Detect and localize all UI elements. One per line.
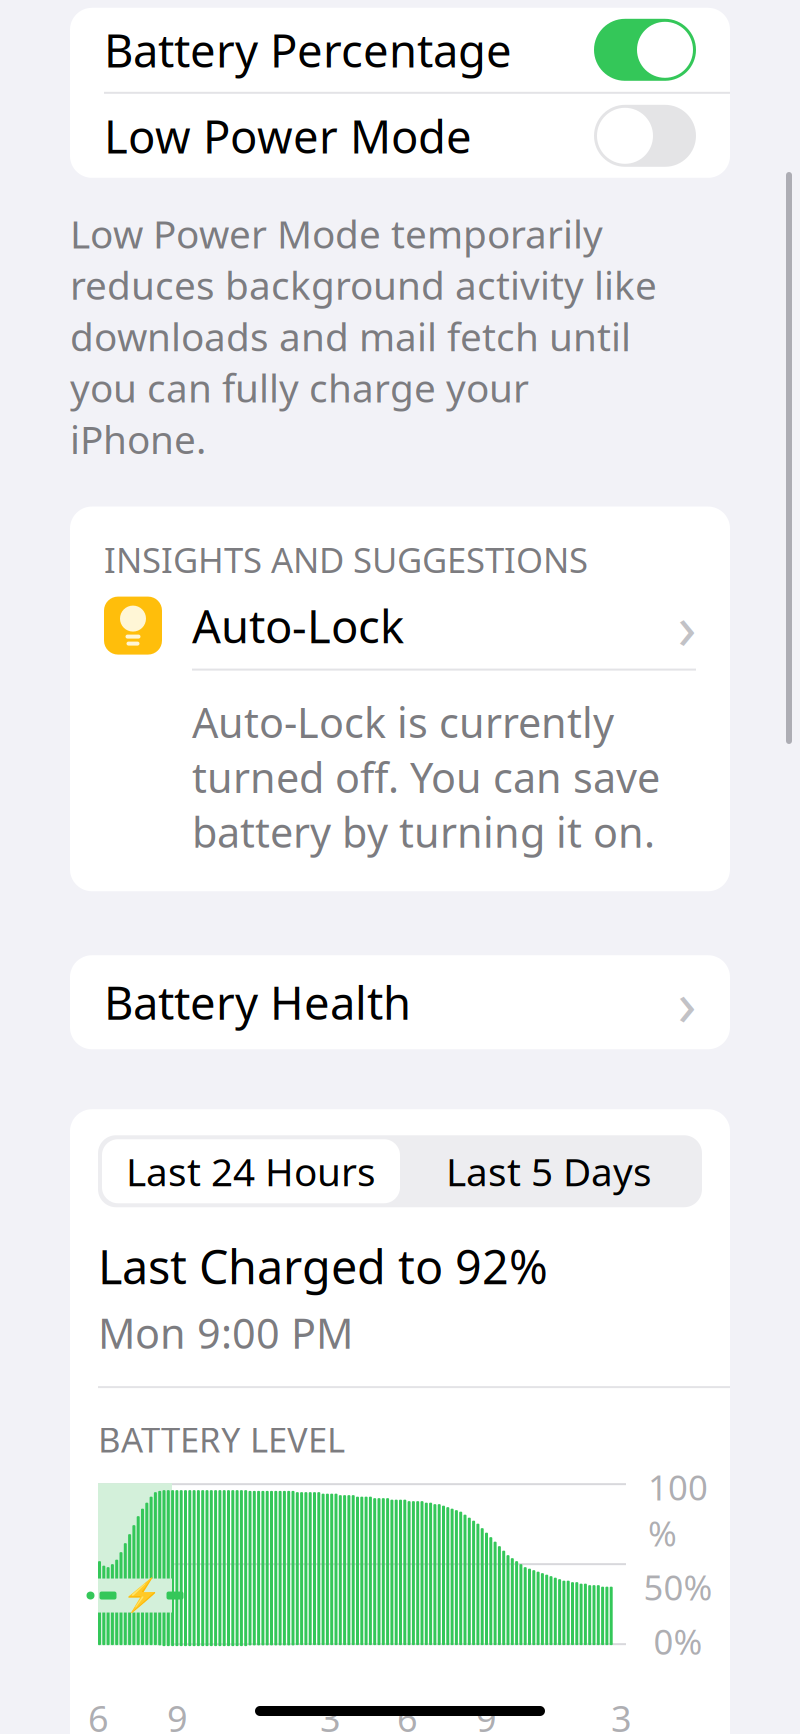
- staticText: 3: [320, 1694, 341, 1734]
- button[interactable]: Low Power Mode: [70, 94, 730, 178]
- staticText: Mon 9:00 PM: [98, 1305, 353, 1360]
- staticText: 3: [611, 1694, 632, 1734]
- staticText: INSIGHTS AND SUGGESTIONS: [104, 537, 588, 583]
- staticText: 6: [397, 1694, 418, 1734]
- button[interactable]: Last 24 Hours: [102, 1139, 400, 1203]
- staticText: Last 24 Hours: [126, 1146, 376, 1197]
- staticText: Low Power Mode: [104, 106, 472, 166]
- button[interactable]: Battery Health: [70, 955, 730, 1049]
- staticText: BATTERY LEVEL: [98, 1416, 345, 1462]
- staticText: 9: [167, 1694, 188, 1734]
- staticText: Battery Health: [104, 972, 411, 1032]
- button[interactable]: Last 5 Days: [400, 1139, 698, 1203]
- staticText: 100%: [648, 1464, 708, 1556]
- staticText: Auto-Lock is currently turned off. You c…: [192, 695, 660, 859]
- staticText: Last Charged to 92%: [98, 1235, 548, 1297]
- staticText: Last 5 Days: [446, 1146, 652, 1197]
- button[interactable]: Auto-Lock: [104, 583, 696, 669]
- staticText: ›: [677, 961, 696, 1043]
- staticText: 6: [88, 1694, 109, 1734]
- staticText: ⚡: [121, 1577, 161, 1614]
- button[interactable]: Battery Percentage: [70, 8, 730, 92]
- staticText: 0%: [653, 1618, 702, 1664]
- staticText: 50%: [643, 1564, 712, 1610]
- staticText: 9: [476, 1694, 497, 1734]
- staticText: Low Power Mode temporarily reduces backg…: [70, 208, 657, 464]
- staticText: ›: [677, 585, 696, 666]
- staticText: Auto-Lock: [192, 595, 404, 656]
- staticText: Battery Percentage: [104, 20, 512, 80]
